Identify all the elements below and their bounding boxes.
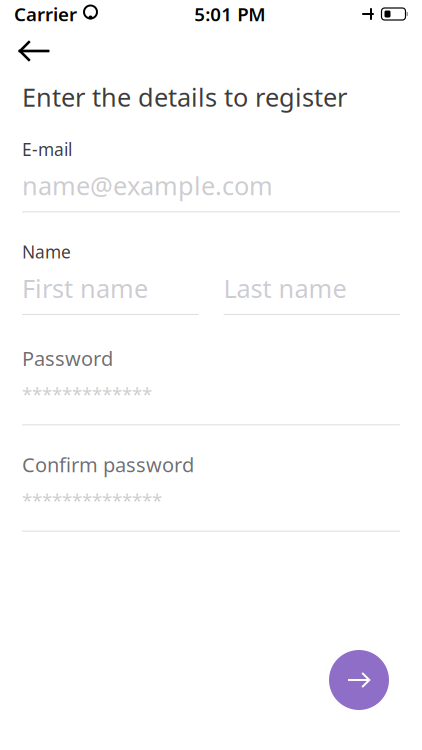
staticText (77, 2, 82, 26)
button[interactable]: First name (22, 263, 198, 315)
button[interactable]: name@example.com (0, 161, 422, 212)
staticText: Password (22, 345, 113, 372)
button[interactable]: Back (6, 29, 62, 73)
staticText: 5:01 PM (194, 2, 265, 26)
staticText: name@example.com (22, 169, 273, 202)
staticText: Carrier (14, 2, 77, 26)
staticText: ************** (22, 488, 162, 513)
button[interactable]: Last name (223, 263, 400, 315)
staticText: E-mail (22, 138, 72, 161)
staticText: Enter the details to register (22, 80, 347, 114)
button[interactable]: ************* (0, 371, 422, 425)
staticText: Name (22, 240, 71, 263)
button[interactable]: ************** (0, 478, 422, 532)
staticText: ************* (22, 381, 152, 406)
staticText: Last name (223, 271, 346, 305)
staticText: First name (22, 271, 148, 305)
button[interactable]: Continue (329, 650, 389, 710)
staticText: Confirm password (22, 451, 194, 478)
